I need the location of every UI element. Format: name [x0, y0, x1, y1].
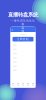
button[interactable]: 奖品名称 — [10, 51, 35, 56]
button[interactable]: Tab — [10, 82, 15, 88]
staticText: 奖品名称 — [12, 44, 16, 46]
button[interactable]: 奖品名称 — [10, 64, 35, 68]
staticText: 奖品名称 — [12, 53, 16, 54]
button[interactable]: 立即开始 — [12, 37, 33, 41]
button[interactable]: Back — [10, 27, 13, 32]
staticText: 奖品名称 — [12, 61, 16, 63]
staticText: 奖品名称 — [12, 49, 16, 50]
button[interactable]: Tab — [15, 82, 20, 88]
staticText: 奖品名称 — [12, 65, 16, 67]
button[interactable]: 奖品名称 — [10, 68, 35, 72]
staticText: 直播转盘系统 — [8, 11, 38, 18]
button[interactable]: 奖品名称 — [10, 60, 35, 64]
staticText: 今日已抽奖 3 次 — [19, 34, 26, 35]
staticText: 幸运转盘 — [21, 23, 24, 36]
staticText: 奖品名称 — [12, 70, 16, 71]
button[interactable]: 奖品名称 — [10, 43, 35, 47]
button[interactable]: 奖品名称 — [10, 47, 35, 51]
button[interactable]: Tab — [20, 82, 25, 88]
staticText: 奖品名称 — [12, 57, 16, 59]
staticText: 一键生成互动玩法 — [11, 19, 35, 22]
staticText: 立即开始 — [17, 38, 29, 41]
button[interactable]: Tab — [30, 82, 35, 88]
button[interactable]: Tab — [25, 82, 30, 88]
button[interactable]: 奖品名称 — [10, 56, 35, 60]
